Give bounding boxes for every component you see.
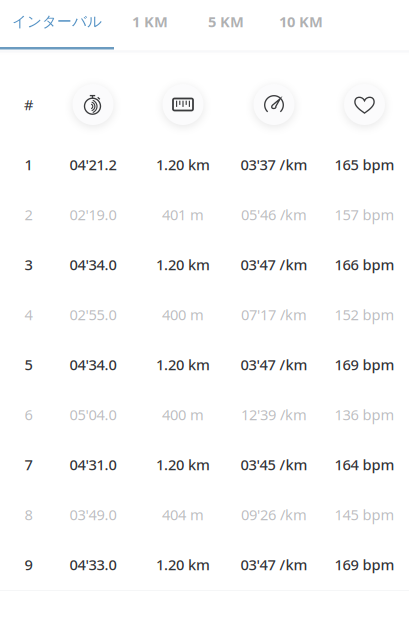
staticText: 04'34.0	[69, 255, 116, 274]
staticText: 2	[24, 205, 32, 224]
staticText: 400 m	[162, 405, 204, 424]
staticText: 8	[24, 505, 32, 524]
staticText: 401 m	[162, 205, 204, 224]
staticText: 04'34.0	[69, 355, 116, 374]
staticText: 1	[24, 155, 32, 174]
staticText: 169 bpm	[334, 555, 394, 574]
staticText: 1 KM	[132, 12, 168, 31]
staticText: インターバル	[12, 12, 102, 30]
staticText: 400 m	[162, 305, 204, 324]
staticText: 164 bpm	[334, 455, 394, 474]
staticText: #	[24, 95, 33, 114]
button[interactable]: 1 KM	[114, 0, 186, 44]
button[interactable]: 10 KM	[261, 0, 341, 44]
staticText: 03'45 /km	[240, 455, 307, 474]
staticText: 6	[24, 405, 32, 424]
staticText: 03'47 /km	[240, 555, 307, 574]
staticText: 1.20 km	[156, 555, 210, 574]
staticText: 145 bpm	[334, 505, 394, 524]
staticText: 169 bpm	[334, 355, 394, 374]
staticText: 136 bpm	[334, 405, 394, 424]
staticText: 157 bpm	[334, 205, 394, 224]
staticText: 04'33.0	[69, 555, 116, 574]
staticText: 03'47 /km	[240, 255, 307, 274]
staticText: 5 KM	[208, 12, 244, 31]
staticText: 1.20 km	[156, 355, 210, 374]
staticText: 404 m	[162, 505, 204, 524]
staticText: 5	[24, 355, 32, 374]
staticText: 10 KM	[279, 12, 323, 31]
staticText: 05'04.0	[69, 405, 116, 424]
button[interactable]: インターバル	[0, 0, 114, 44]
staticText: 03'47 /km	[240, 355, 307, 374]
staticText: 09'26 /km	[241, 505, 307, 524]
staticText: 07'17 /km	[241, 305, 307, 324]
button[interactable]: 5 KM	[188, 0, 264, 44]
staticText: 166 bpm	[334, 255, 394, 274]
staticText: 152 bpm	[334, 305, 394, 324]
staticText: 02'19.0	[69, 205, 116, 224]
staticText: 04'21.2	[69, 155, 116, 174]
staticText: 1.20 km	[156, 255, 210, 274]
staticText: 7	[24, 455, 32, 474]
staticText: 1.20 km	[156, 455, 210, 474]
staticText: 03'37 /km	[240, 155, 307, 174]
staticText: 12'39 /km	[241, 405, 307, 424]
staticText: 9	[24, 555, 32, 574]
staticText: 4	[24, 305, 32, 324]
staticText: 03'49.0	[69, 505, 116, 524]
staticText: 165 bpm	[334, 155, 394, 174]
staticText: 04'31.0	[69, 455, 116, 474]
staticText: 3	[24, 255, 32, 274]
staticText: 05'46 /km	[241, 205, 307, 224]
staticText: 02'55.0	[69, 305, 116, 324]
staticText: 1.20 km	[156, 155, 210, 174]
